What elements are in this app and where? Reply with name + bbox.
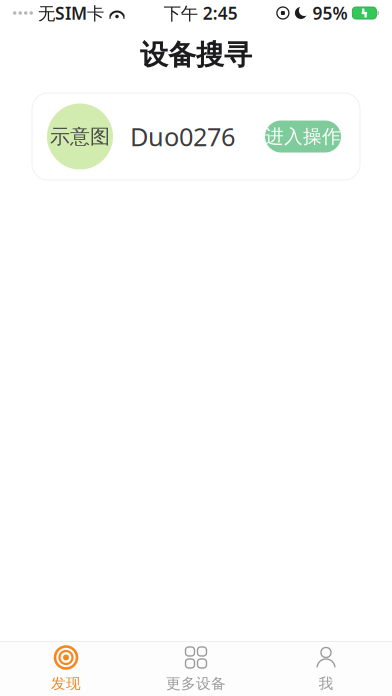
staticText: 示意图 — [50, 124, 110, 149]
button[interactable]: 进入操作 — [265, 120, 341, 152]
staticText: 设备搜寻 — [140, 38, 252, 72]
button[interactable]: 更多设备 — [131, 642, 261, 696]
staticText: 更多设备 — [166, 674, 226, 692]
staticText: 发现 — [51, 674, 81, 692]
button[interactable]: 发现 — [1, 642, 131, 696]
staticText: 下午 2:45 — [164, 1, 238, 24]
staticText: 95% — [312, 1, 347, 24]
staticText: 进入操作 — [265, 125, 341, 148]
staticText: 无SIM卡 — [33, 1, 104, 24]
staticText: 我 — [318, 674, 333, 692]
staticText: Duo0276 — [130, 120, 235, 153]
button[interactable]: 我 — [261, 642, 391, 696]
